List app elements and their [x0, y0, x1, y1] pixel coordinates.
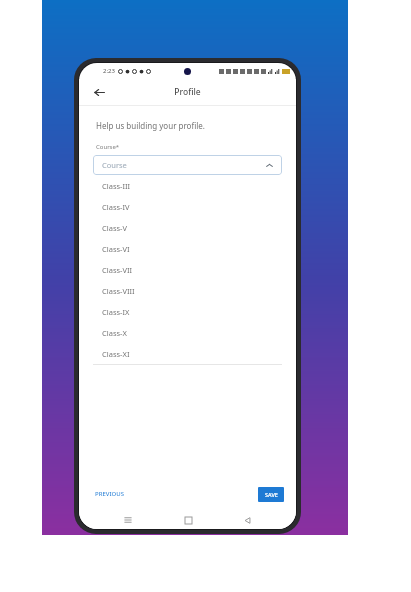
- staticText: Class-V: [102, 223, 127, 233]
- staticText: Class-VIII: [102, 286, 135, 296]
- staticText: Class-VII: [102, 265, 133, 275]
- button[interactable]: SAVE: [258, 487, 284, 502]
- staticText: Class-IX: [102, 307, 130, 317]
- staticText: Class-IV: [102, 202, 130, 212]
- button[interactable]: Class-III: [93, 175, 282, 196]
- button[interactable]: Back: [89, 82, 109, 102]
- staticText: Class-VI: [102, 244, 130, 254]
- button[interactable]: Class-IX: [93, 301, 282, 322]
- staticText: Class-XI: [102, 349, 130, 359]
- staticText: Class-X: [102, 328, 127, 338]
- button[interactable]: Class-XI: [93, 343, 282, 364]
- button[interactable]: Recents: [118, 511, 138, 529]
- button[interactable]: Course: [93, 155, 282, 175]
- button[interactable]: Class-V: [93, 217, 282, 238]
- button[interactable]: Class-IV: [93, 196, 282, 217]
- staticText: Help us building your profile.: [96, 120, 205, 131]
- staticText: SAVE: [265, 491, 278, 498]
- staticText: PREVIOUS: [95, 490, 125, 498]
- staticText: Course*: [96, 143, 120, 151]
- button[interactable]: Class-VII: [93, 259, 282, 280]
- button[interactable]: PREVIOUS: [91, 486, 129, 502]
- staticText: Class-III: [102, 181, 131, 191]
- button[interactable]: Home: [178, 511, 198, 529]
- button[interactable]: Class-VI: [93, 238, 282, 259]
- button[interactable]: Back: [237, 511, 257, 529]
- staticText: Course: [102, 160, 127, 170]
- button[interactable]: Class-X: [93, 322, 282, 343]
- staticText: Profile: [174, 86, 201, 98]
- button[interactable]: Class-VIII: [93, 280, 282, 301]
- staticText: 2:23: [103, 67, 115, 75]
